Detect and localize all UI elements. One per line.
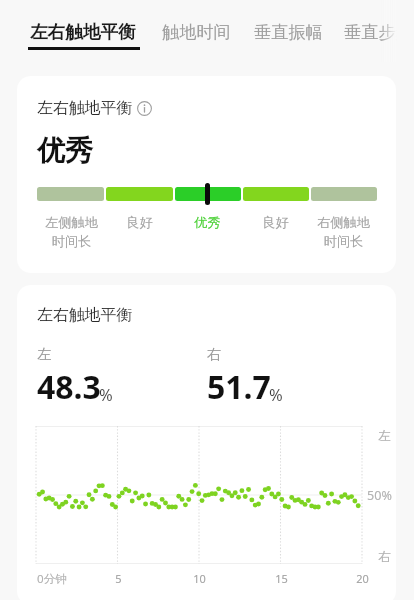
staticText: 右: [207, 345, 222, 363]
staticText: 左右触地平衡: [37, 305, 133, 325]
staticText: 10: [193, 571, 206, 586]
staticText: 50%: [367, 487, 392, 504]
staticText: 左右触地平衡: [30, 21, 136, 43]
staticText: 左右触地平衡: [37, 98, 133, 118]
staticText: 左: [37, 345, 52, 363]
button[interactable]: 左右触地平衡: [30, 21, 136, 43]
staticText: 良好: [262, 214, 289, 231]
staticText: %: [99, 383, 113, 405]
staticText: 5: [115, 571, 122, 586]
staticText: 左侧触地 时间长: [45, 214, 98, 250]
staticText: 右: [378, 549, 391, 565]
staticText: 右侧触地 时间长: [317, 214, 370, 250]
staticText: 51.7: [207, 365, 271, 409]
staticText: 垂直振幅: [254, 21, 323, 43]
staticText: 垂直步频: [344, 21, 413, 43]
other: Info: [137, 101, 152, 116]
staticText: %: [269, 383, 283, 405]
staticText: 优秀: [194, 214, 221, 231]
staticText: 优秀: [37, 133, 93, 168]
staticText: 15: [275, 571, 288, 586]
staticText: 左: [378, 428, 391, 444]
staticText: 20: [356, 571, 369, 586]
staticText: 48.3: [37, 365, 101, 409]
staticText: 触地时间: [162, 21, 231, 43]
staticText: 良好: [126, 214, 153, 231]
button[interactable]: 垂直步频: [344, 21, 413, 43]
staticText: 0分钟: [37, 571, 67, 587]
button[interactable]: 触地时间: [162, 21, 231, 43]
button[interactable]: 垂直振幅: [254, 21, 323, 43]
